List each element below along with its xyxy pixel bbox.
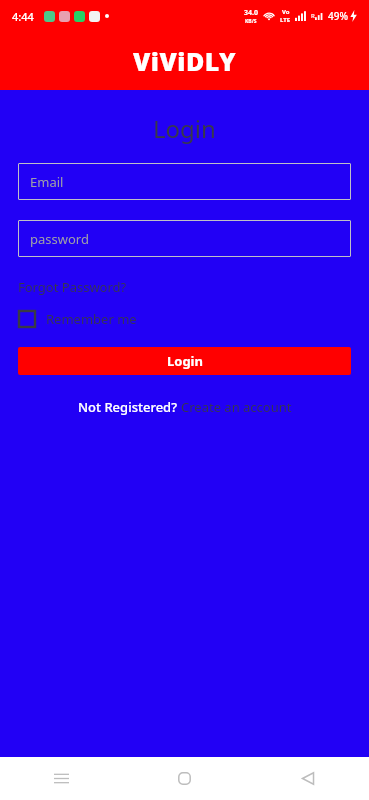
staticText: Login xyxy=(167,352,203,370)
staticText: KB/S xyxy=(245,18,257,25)
staticText: Not Registered? xyxy=(78,398,181,416)
staticText: ViViDLY xyxy=(133,44,237,78)
button[interactable]: password xyxy=(18,220,351,257)
staticText: Email xyxy=(30,173,64,191)
staticText: 34.0 xyxy=(244,8,258,18)
staticText: Vo xyxy=(282,8,290,16)
staticText: 49% xyxy=(328,9,348,23)
button[interactable]: Email xyxy=(18,163,351,200)
button[interactable]: Remember me xyxy=(18,310,137,328)
staticText: 4:44 xyxy=(12,9,34,24)
staticText: LTE xyxy=(280,16,291,24)
button[interactable]: Create an account xyxy=(181,398,292,416)
button[interactable]: Recent apps xyxy=(0,757,123,800)
staticText: Login xyxy=(153,112,216,145)
staticText: password xyxy=(30,230,89,248)
button[interactable]: Login xyxy=(18,347,351,375)
staticText: R xyxy=(311,12,315,20)
button[interactable]: Forgot Password? xyxy=(18,277,127,297)
staticText: Forgot Password? xyxy=(18,278,127,296)
button[interactable]: Home xyxy=(123,757,246,800)
staticText: Create an account xyxy=(181,398,292,416)
button[interactable]: Back xyxy=(246,757,369,800)
staticText: Remember me xyxy=(46,310,137,328)
